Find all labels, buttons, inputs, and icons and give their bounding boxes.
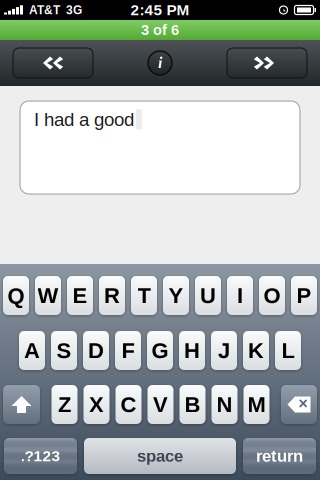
staticText: N [216,392,232,417]
button[interactable]: V [147,385,173,424]
staticText: U [200,283,216,308]
staticText: 3 of 6 [141,22,179,38]
button[interactable]: S [51,331,77,370]
button[interactable]: N [211,385,237,424]
staticText: F [121,338,134,363]
button[interactable]: L [275,331,301,370]
button[interactable]: R [99,276,125,315]
button[interactable]: C [115,385,141,424]
button[interactable]: Y [163,276,189,315]
staticText: A [24,338,40,363]
button[interactable]: K [243,331,269,370]
staticText: I had a good [34,109,134,130]
button[interactable]: .?123 [4,438,77,474]
button[interactable]: Info [148,51,172,75]
staticText: L [281,338,294,363]
staticText: 2:45 PM [130,1,189,18]
button[interactable]: Shift [3,385,40,424]
staticText: X [89,392,104,417]
button[interactable]: space [84,438,236,474]
button[interactable]: H [179,331,205,370]
button[interactable]: Delete [281,385,317,424]
button[interactable]: F [115,331,141,370]
staticText: S [56,338,71,363]
button[interactable]: Z [51,385,77,424]
button[interactable]: E [67,276,93,315]
staticText: T [137,283,150,308]
staticText: Z [58,392,71,417]
staticText: × [298,395,307,412]
staticText: P [296,283,311,308]
staticText: Y [168,283,183,308]
button[interactable]: Next card [227,48,307,78]
staticText: E [72,283,87,308]
staticText: i [158,54,162,72]
button[interactable]: O [259,276,285,315]
staticText: M [247,392,265,417]
button[interactable]: W [35,276,61,315]
staticText: I [237,283,243,308]
staticText: Q [7,283,24,308]
staticText: B [184,392,200,417]
staticText: W [37,283,58,308]
staticText: AT&T [29,3,60,17]
staticText: H [184,338,200,363]
button[interactable]: D [83,331,109,370]
button[interactable]: return [243,438,316,474]
staticText: O [263,283,280,308]
staticText: 3G [66,3,82,17]
button[interactable]: P [291,276,317,315]
button[interactable]: M [243,385,269,424]
button[interactable]: I [227,276,253,315]
button[interactable]: U [195,276,221,315]
staticText: K [248,338,264,363]
staticText: G [151,338,168,363]
staticText: J [218,338,230,363]
staticText: V [153,392,168,417]
button[interactable]: A [19,331,45,370]
button[interactable]: T [131,276,157,315]
staticText: R [104,283,120,308]
staticText: C [120,392,136,417]
staticText: return [256,447,303,465]
button[interactable]: G [147,331,173,370]
button[interactable]: J [211,331,237,370]
button[interactable]: X [83,385,109,424]
staticText: .?123 [20,447,60,464]
staticText: space [137,447,183,465]
button[interactable]: Q [3,276,29,315]
staticText: D [88,338,104,363]
button[interactable]: B [179,385,205,424]
button[interactable]: Previous card [13,48,93,78]
